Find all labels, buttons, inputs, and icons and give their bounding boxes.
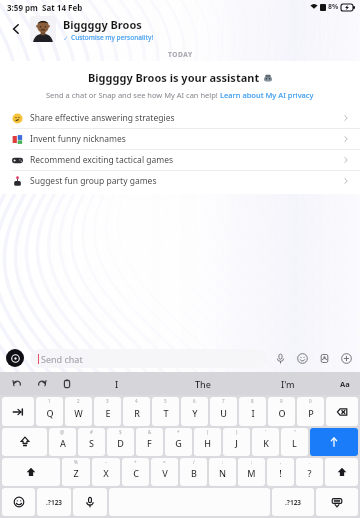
button[interactable]: Camera <box>6 349 24 367</box>
button[interactable]: Voice note <box>273 351 288 366</box>
staticText: ? <box>307 467 312 479</box>
button[interactable]: Voice input <box>73 488 107 516</box>
button[interactable]: , <box>267 458 294 486</box>
staticText: 9 <box>280 398 283 404</box>
button[interactable]: ( <box>194 428 221 456</box>
staticText: Send chat <box>41 353 83 365</box>
button[interactable]: Emoji <box>2 488 35 516</box>
button[interactable]: @ <box>49 428 76 456</box>
staticText: U <box>220 407 227 419</box>
staticText: J <box>235 437 238 449</box>
button[interactable]: Clipboard <box>60 377 74 391</box>
staticText: Recommend exciting tactical games <box>30 154 342 166</box>
button[interactable]: 2 <box>65 397 92 426</box>
staticText: .?123 <box>46 498 63 507</box>
button[interactable]: Shift <box>2 458 60 486</box>
button[interactable]: / <box>180 458 207 486</box>
button[interactable]: - <box>92 458 120 486</box>
button[interactable]: 9 <box>268 397 295 426</box>
staticText: 6 <box>193 398 196 404</box>
button[interactable]: Redo <box>35 377 49 391</box>
button[interactable]: Biggggy Broos <box>63 17 352 42</box>
button[interactable]: 3 <box>94 397 121 426</box>
button[interactable]: Share effective answering strategies <box>0 108 360 128</box>
staticText: Customise my personality! <box>71 33 154 42</box>
button[interactable]: The <box>160 372 245 395</box>
staticText: I <box>251 407 255 419</box>
button[interactable]: & <box>136 428 163 456</box>
button[interactable]: Suggest fun group party games <box>0 171 360 191</box>
button[interactable]: ) <box>223 428 250 456</box>
button[interactable]: 8 <box>239 397 266 426</box>
button[interactable]: Recommend exciting tactical games <box>0 150 360 170</box>
button[interactable]: = <box>151 458 178 486</box>
button[interactable]: + <box>122 458 149 486</box>
staticText: TODAY <box>168 50 193 59</box>
staticText: Y <box>192 407 198 419</box>
button[interactable]: More <box>339 351 354 366</box>
button[interactable]: Send chat <box>30 349 267 368</box>
button[interactable]: 4 <box>123 397 150 426</box>
staticText: - <box>105 459 107 465</box>
staticText: M <box>247 467 256 479</box>
staticText: E <box>105 407 111 419</box>
staticText: 8% <box>328 2 339 12</box>
staticText: 8 <box>251 398 254 404</box>
button[interactable]: Tab <box>2 397 34 426</box>
staticText: H <box>204 437 211 449</box>
button[interactable]: 0 <box>297 397 324 426</box>
staticText: Z <box>73 467 79 479</box>
button[interactable]: Invent funny nicknames <box>0 129 360 149</box>
button[interactable]: ' <box>252 428 279 456</box>
staticText: $ <box>119 429 122 435</box>
button[interactable]: " <box>281 428 308 456</box>
button[interactable]: # <box>78 428 105 456</box>
button[interactable]: I <box>74 372 160 395</box>
staticText: Send a chat or Snap and see how My AI ca… <box>46 90 220 100</box>
button[interactable]: Caps lock <box>2 428 47 456</box>
staticText: * <box>177 429 180 435</box>
button[interactable]: Cameo <box>317 351 332 366</box>
staticText: N <box>219 467 226 479</box>
staticText: Biggggy Broos <box>63 17 142 32</box>
button[interactable]: $ <box>107 428 134 456</box>
button[interactable]: 5 <box>152 397 179 426</box>
staticText: 7 <box>222 398 225 404</box>
staticText: Suggest fun group party games <box>30 175 342 187</box>
button[interactable]: . <box>296 458 323 486</box>
staticText: B <box>191 467 197 479</box>
button[interactable]: % <box>62 458 90 486</box>
staticText: Aa <box>340 379 350 389</box>
staticText: 0 <box>309 398 312 404</box>
staticText: .?123 <box>285 498 302 507</box>
button[interactable]: ; <box>238 458 265 486</box>
button[interactable]: 7 <box>210 397 237 426</box>
button[interactable]: 6 <box>181 397 208 426</box>
button[interactable]: Backspace <box>326 397 358 426</box>
button[interactable]: Stickers <box>295 351 310 366</box>
staticText: # <box>90 429 93 435</box>
staticText: % <box>74 459 78 465</box>
button[interactable]: Text options <box>330 372 360 395</box>
button[interactable]: Hide keyboard <box>316 488 358 516</box>
button[interactable]: * <box>165 428 192 456</box>
staticText: ; <box>251 459 253 465</box>
button[interactable]: Enter <box>310 428 358 456</box>
button[interactable]: Numbers right <box>272 488 314 516</box>
staticText: R <box>134 407 140 419</box>
button[interactable]: Shift right <box>325 458 358 486</box>
button[interactable]: : <box>209 458 236 486</box>
button[interactable]: Undo <box>10 377 24 391</box>
button[interactable]: I'm <box>245 372 330 395</box>
button[interactable]: 1 <box>36 397 63 426</box>
staticText: F <box>147 437 152 449</box>
staticText: : <box>222 459 224 465</box>
staticText: 5 <box>164 398 167 404</box>
staticText: Share effective answering strategies <box>30 112 342 124</box>
button[interactable]: Numbers <box>37 488 71 516</box>
staticText: C <box>133 467 139 479</box>
button[interactable]: Back <box>4 17 28 41</box>
button[interactable]: Learn about My AI privacy <box>220 90 314 100</box>
staticText: 4 <box>135 398 138 404</box>
